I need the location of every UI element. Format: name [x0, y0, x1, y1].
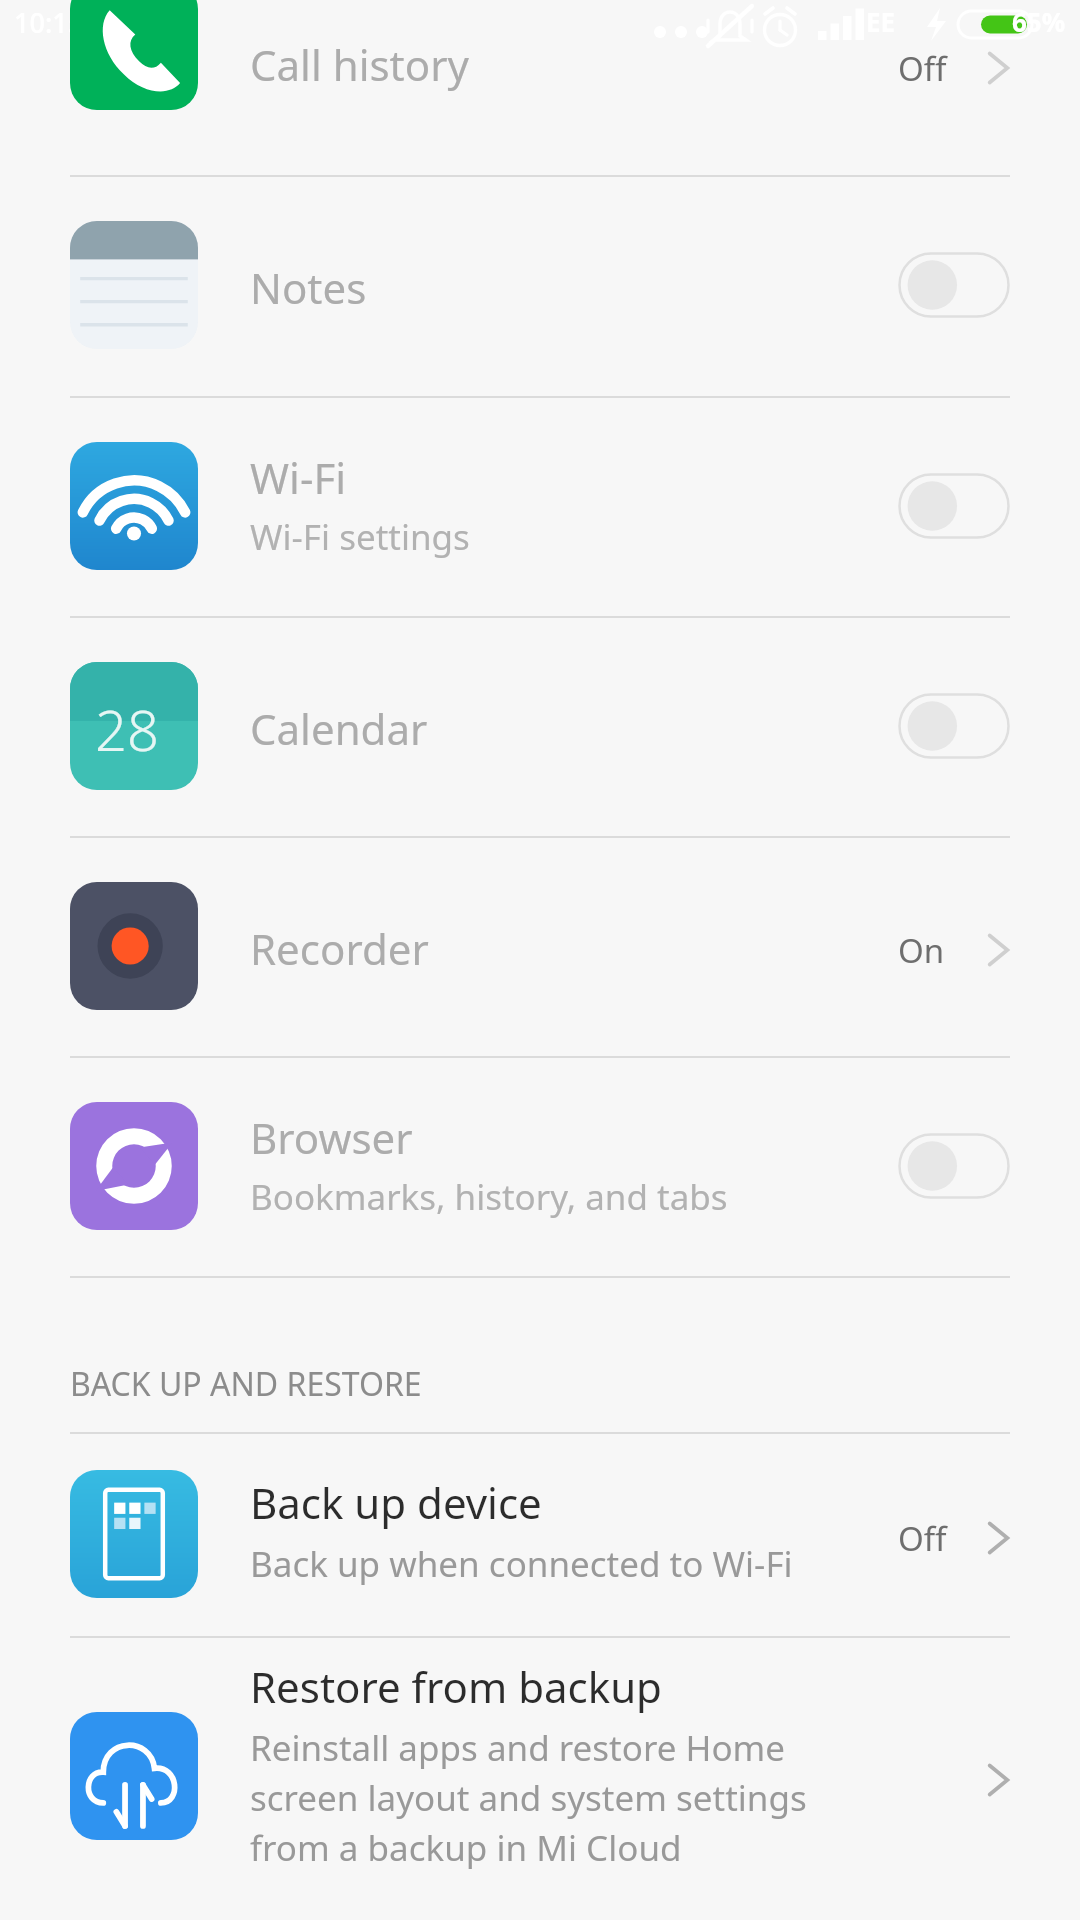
staticText: BACK UP AND RESTORE — [70, 1362, 422, 1406]
staticText: EE — [866, 4, 896, 39]
button[interactable]: Calendar toggle — [898, 693, 1010, 759]
staticText: Call history — [250, 36, 469, 93]
button[interactable]: Back up device — [0, 1432, 1080, 1636]
button[interactable]: 28 — [0, 616, 1080, 836]
staticText: On — [898, 928, 945, 973]
button[interactable]: Notes toggle — [898, 252, 1010, 318]
staticText: 10:15 — [14, 4, 84, 41]
button[interactable]: Wi-Fi — [0, 396, 1080, 616]
button[interactable]: Restore from backup — [0, 1636, 1080, 1920]
staticText: Back up device — [250, 1474, 542, 1531]
staticText: Calendar — [250, 700, 428, 757]
staticText: Wi-Fi — [250, 449, 347, 506]
staticText: Wi-Fi settings — [250, 513, 470, 561]
button[interactable]: Recorder — [0, 836, 1080, 1056]
button[interactable]: Browser toggle — [898, 1133, 1010, 1199]
button[interactable]: Call history — [0, 0, 1080, 175]
staticText: 28 — [95, 691, 159, 767]
staticText: Off — [898, 46, 947, 91]
staticText: 65% — [1012, 4, 1066, 39]
staticText: Browser — [250, 1109, 413, 1166]
button[interactable]: Notes — [0, 175, 1080, 396]
staticText: Recorder — [250, 920, 429, 977]
staticText: Back up when connected to Wi-Fi — [250, 1540, 793, 1588]
staticText: Notes — [250, 259, 367, 316]
button[interactable]: Wi-Fi toggle — [898, 473, 1010, 539]
staticText: Bookmarks, history, and tabs — [250, 1173, 728, 1221]
staticText: Reinstall apps and restore Home screen l… — [250, 1724, 840, 1871]
button[interactable]: Browser — [0, 1056, 1080, 1276]
staticText: Off — [898, 1516, 947, 1561]
staticText: Restore from backup — [250, 1658, 662, 1715]
